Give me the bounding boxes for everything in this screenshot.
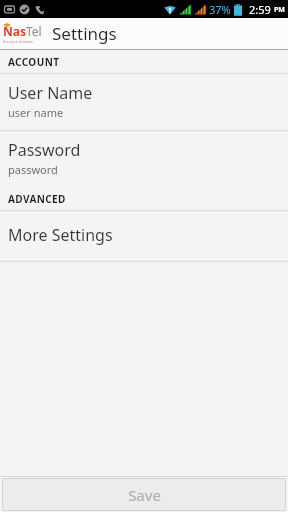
staticText: User Name (8, 82, 93, 104)
button[interactable]: More Settings (0, 211, 288, 261)
staticText: Tel (26, 23, 42, 39)
staticText: Nas (3, 23, 26, 39)
button[interactable]: Save (2, 478, 286, 511)
staticText: ADVANCED (8, 192, 66, 206)
staticText: ACCOUNT (8, 55, 60, 69)
staticText: Password (8, 139, 81, 161)
staticText: password (8, 162, 58, 177)
staticText: user name (8, 105, 64, 120)
button[interactable]: Password (0, 131, 288, 187)
staticText: 37% (209, 2, 231, 17)
staticText: More Settings (8, 224, 113, 246)
staticText: PM (274, 5, 285, 15)
button[interactable]: User Name (0, 74, 288, 130)
staticText: Save (128, 485, 161, 505)
staticText: Settings (52, 22, 117, 45)
staticText: 2:59 (249, 2, 271, 17)
staticText: the voice of nation (3, 39, 34, 44)
